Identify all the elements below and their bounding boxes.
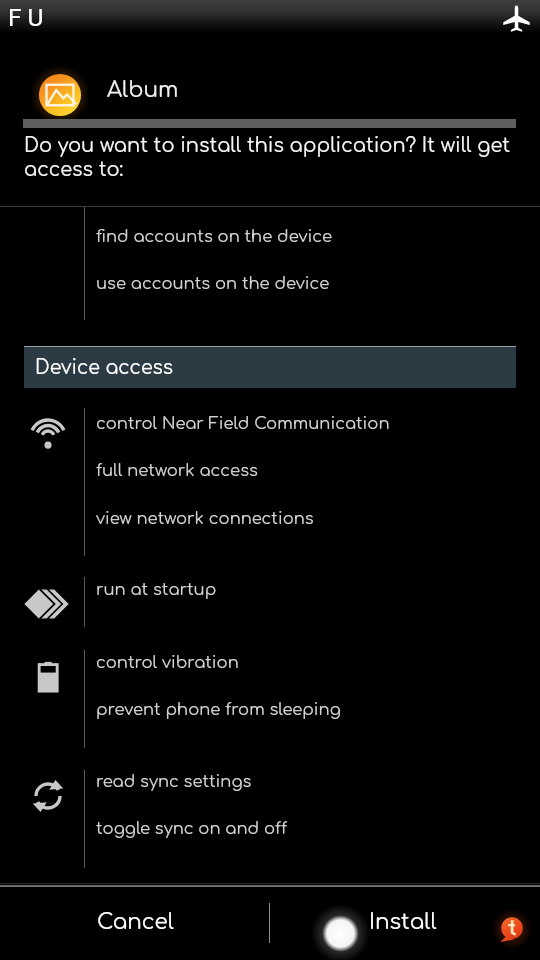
staticText: run at startup	[96, 581, 217, 599]
staticText: control vibration	[96, 654, 239, 672]
other: Notification	[500, 917, 524, 941]
staticText: Install	[369, 910, 437, 934]
staticText: control Near Field Communication	[96, 415, 390, 433]
staticText: F U	[8, 3, 44, 32]
button[interactable]: Cancel	[0, 888, 269, 960]
button[interactable]: read sync settings	[85, 765, 540, 799]
staticText: view network connections	[96, 510, 314, 528]
staticText: Cancel	[97, 910, 174, 934]
staticText: find accounts on the device	[96, 228, 333, 246]
staticText: full network access	[96, 462, 258, 480]
staticText: prevent phone from sleeping	[96, 701, 341, 719]
staticText: toggle sync on and off	[96, 820, 288, 838]
button[interactable]: control vibration	[85, 646, 540, 680]
button[interactable]: find accounts on the device	[85, 220, 540, 254]
button[interactable]: control Near Field Communication	[85, 407, 540, 441]
button[interactable]: full network access	[85, 454, 540, 488]
button[interactable]: prevent phone from sleeping	[85, 693, 540, 727]
button[interactable]: Install	[270, 888, 540, 960]
button[interactable]: use accounts on the device	[85, 267, 540, 301]
button[interactable]: view network connections	[85, 502, 540, 536]
button[interactable]: Device access	[24, 346, 516, 388]
staticText: Do you want to install this application?…	[24, 135, 520, 181]
button[interactable]: toggle sync on and off	[85, 812, 540, 846]
staticText: Device access	[35, 357, 174, 378]
button[interactable]: run at startup	[85, 573, 540, 607]
other: Airplane mode	[503, 5, 530, 32]
staticText: Album	[107, 78, 179, 102]
staticText: use accounts on the device	[96, 275, 330, 293]
staticText: read sync settings	[96, 773, 252, 791]
